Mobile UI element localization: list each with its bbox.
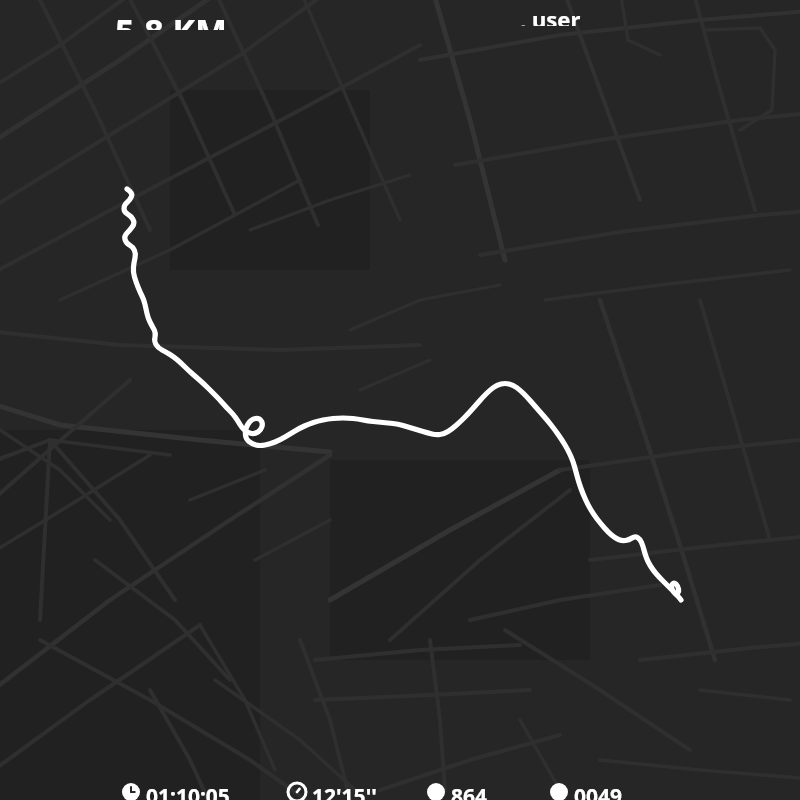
button[interactable]: time (0, 782, 800, 800)
button[interactable]: 5,8 KM (0, 0, 800, 22)
other: pace (288, 783, 306, 800)
staticText: 864 (451, 782, 488, 800)
other: cal (427, 783, 445, 800)
staticText: 12'15'' (312, 782, 377, 800)
staticText: 5,8 KM (115, 8, 228, 30)
staticText: 01:10:05 (146, 782, 230, 800)
other: time (122, 783, 140, 800)
staticText: , user (520, 4, 581, 26)
other: elev (550, 783, 568, 800)
staticText: 0049 (574, 782, 623, 800)
